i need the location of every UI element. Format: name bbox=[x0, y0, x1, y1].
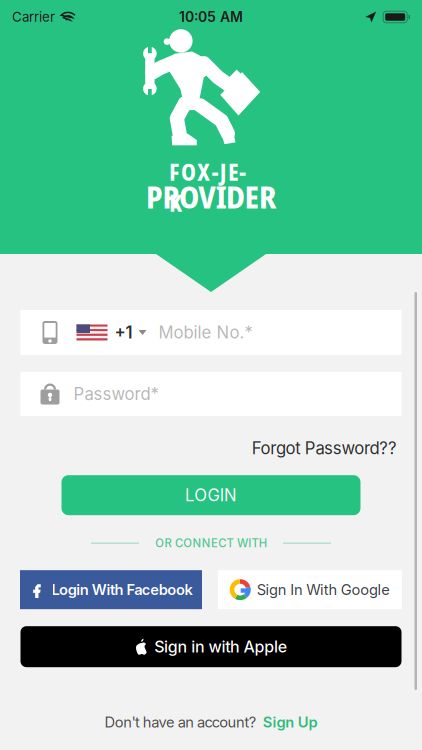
staticText: Carrier bbox=[12, 9, 55, 25]
staticText: Sign Up bbox=[263, 713, 318, 731]
staticText: FOX‑JEK bbox=[169, 157, 253, 187]
button[interactable]: LOGIN bbox=[61, 475, 360, 515]
staticText: Don't have an account? bbox=[104, 713, 256, 731]
staticText: PROVIDER bbox=[146, 176, 276, 217]
button[interactable]: Sign in with Apple bbox=[20, 626, 401, 667]
button[interactable]: Sign Up bbox=[263, 713, 318, 731]
button[interactable]: +1 bbox=[20, 310, 401, 355]
button[interactable]: Password* bbox=[20, 372, 401, 416]
staticText: Login With Facebook bbox=[52, 581, 192, 598]
staticText: 10:05 AM bbox=[179, 8, 243, 25]
staticText: Sign in with Apple bbox=[154, 637, 287, 656]
staticText: LOGIN bbox=[185, 485, 237, 505]
staticText: OR CONNECT WITH bbox=[155, 536, 267, 550]
staticText: Mobile No.* bbox=[158, 322, 252, 343]
staticText: Sign In With Google bbox=[257, 581, 390, 598]
staticText: Password* bbox=[73, 384, 158, 404]
button[interactable]: Sign In With Google bbox=[218, 570, 402, 609]
button[interactable]: Forgot Password?? bbox=[252, 432, 412, 464]
button[interactable]: Login With Facebook bbox=[20, 570, 202, 609]
staticText: Forgot Password?? bbox=[252, 438, 397, 458]
staticText: +1 bbox=[114, 322, 132, 343]
